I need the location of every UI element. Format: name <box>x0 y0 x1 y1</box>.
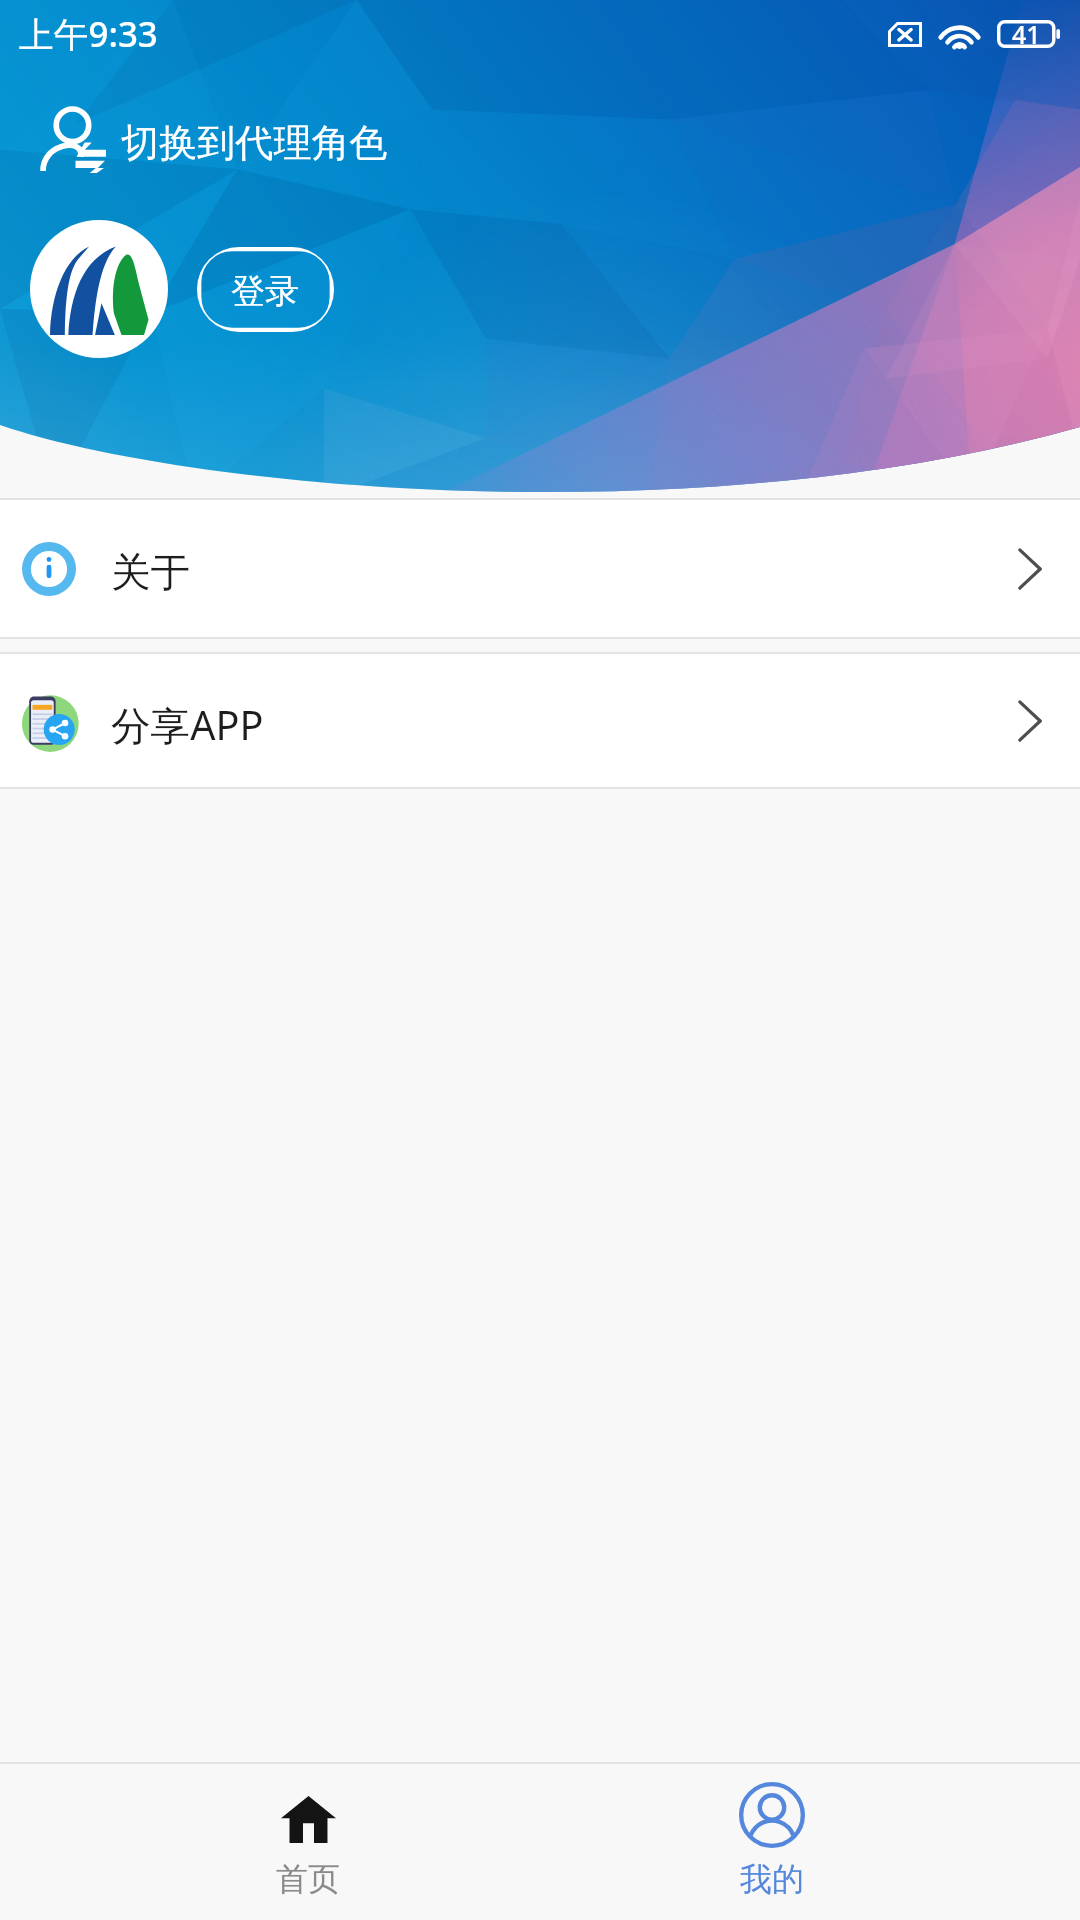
staticText: 41 <box>1012 17 1041 51</box>
button[interactable]: 切换到代理角色 <box>42 99 418 182</box>
staticText: 登录 <box>231 270 300 313</box>
button[interactable]: 关于 <box>0 500 1080 637</box>
staticText: 切换到代理角色 <box>121 119 388 167</box>
staticText: 关于 <box>111 548 191 598</box>
staticText: 上午9:33 <box>19 10 158 58</box>
other: 切换到代理角色 <box>42 108 107 173</box>
button[interactable]: 分享APP <box>0 654 1080 787</box>
staticText: 我的 <box>740 1859 805 1899</box>
button[interactable]: 首页 <box>236 1764 380 1920</box>
staticText: 分享APP <box>111 698 264 752</box>
button[interactable]: 登录 <box>197 247 334 332</box>
button[interactable]: 我的 <box>700 1764 844 1920</box>
staticText: 首页 <box>276 1859 341 1899</box>
